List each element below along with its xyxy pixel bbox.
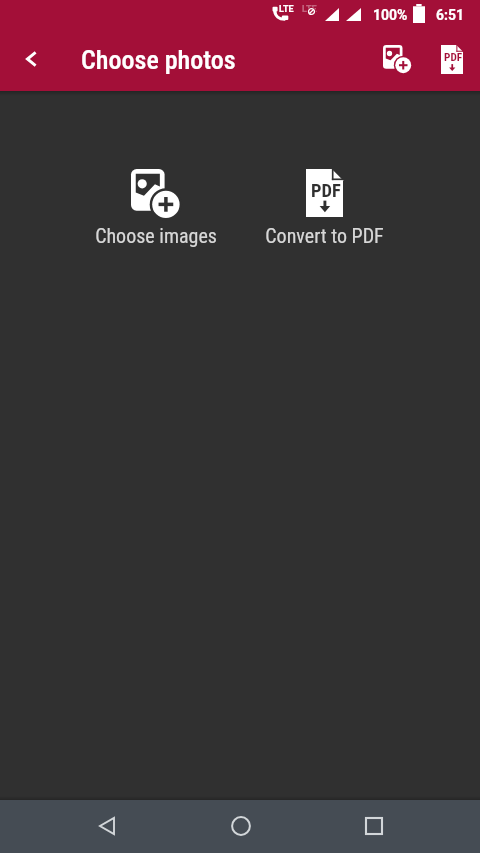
- staticText: LTE: [279, 4, 294, 15]
- staticText: Choose images: [95, 224, 217, 247]
- button[interactable]: Convert to PDF: [428, 35, 476, 83]
- staticText: LTE: [302, 4, 317, 15]
- button[interactable]: Recent apps: [343, 799, 405, 852]
- button[interactable]: Choose images: [76, 161, 236, 247]
- button[interactable]: PDF: [244, 161, 404, 247]
- button[interactable]: Home: [210, 799, 272, 852]
- staticText: 100%: [373, 7, 408, 23]
- button[interactable]: Back: [76, 799, 138, 852]
- staticText: 6:51: [436, 7, 465, 23]
- staticText: Convert to PDF: [265, 224, 384, 247]
- staticText: PDF: [311, 180, 341, 202]
- button[interactable]: Add images: [373, 35, 421, 83]
- staticText: PDF: [444, 51, 463, 64]
- staticText: Choose photos: [81, 45, 236, 75]
- button[interactable]: Navigate up: [7, 35, 55, 83]
